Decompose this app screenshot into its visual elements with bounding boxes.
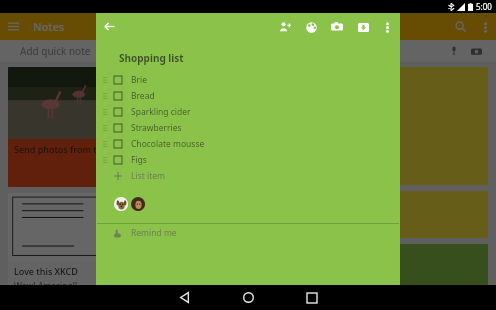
button[interactable]: Bread [96, 88, 400, 104]
button[interactable]: Send photos from the zoo [8, 67, 244, 187]
button[interactable]: Back [167, 285, 201, 310]
button[interactable]: Thanksgiving dinner RSVPs [258, 72, 488, 179]
staticText: Bread [131, 90, 155, 102]
button[interactable]: Collaborator [114, 197, 128, 211]
button[interactable]: Remind me [96, 224, 400, 242]
button[interactable]: Surprise party for Kristen [256, 194, 488, 234]
staticText: Surprise party for Kristen [256, 194, 356, 234]
button[interactable]: Archive [350, 14, 376, 40]
staticText: List item [131, 170, 166, 182]
button[interactable]: Menu [0, 13, 27, 40]
button[interactable]: Change color [298, 14, 324, 40]
staticText: Love this XKCD [14, 265, 78, 277]
button[interactable]: Recent apps [295, 285, 329, 310]
button[interactable]: Brie [96, 72, 400, 88]
button[interactable]: Then Jordan meets then Ewan meets then T… [257, 250, 488, 277]
button[interactable]: Love this XKCD [8, 193, 244, 285]
button[interactable]: Search [447, 13, 474, 40]
button[interactable]: Figs [96, 152, 400, 168]
staticText: 5:00 [476, 1, 492, 12]
button[interactable]: Sparkling cider [96, 104, 400, 120]
staticText: Add quick note [20, 44, 91, 58]
staticText: Notes [33, 19, 65, 34]
button[interactable]: Strawberries [96, 120, 400, 136]
button[interactable]: Collaborator [131, 197, 145, 211]
button[interactable]: Add collaborator [272, 14, 298, 40]
button[interactable]: Back [96, 13, 123, 40]
button[interactable]: Chocolate mousse [96, 136, 400, 152]
staticText: Send photos from the zoo [14, 143, 126, 155]
staticText: Remind me [131, 227, 177, 239]
staticText: Sparkling cider [131, 106, 191, 118]
staticText: Shopping list [119, 51, 184, 65]
staticText: Brie [131, 74, 148, 86]
button[interactable]: Home [231, 285, 265, 310]
staticText: Strawberries [131, 122, 182, 134]
button[interactable]: More options [376, 16, 398, 38]
staticText: Chocolate mousse [131, 138, 205, 150]
button[interactable]: Add image [324, 14, 350, 40]
button[interactable]: List item [96, 168, 400, 184]
staticText: Wow! Amazing!! [14, 280, 78, 285]
staticText: Figs [131, 154, 147, 166]
button[interactable]: More options [474, 16, 496, 38]
